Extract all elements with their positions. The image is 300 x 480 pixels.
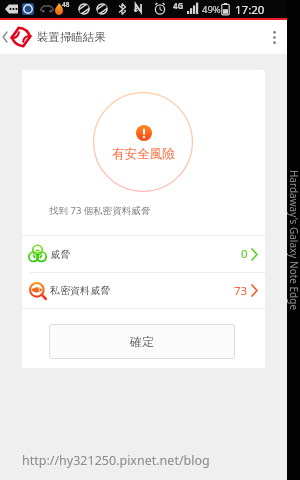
- button[interactable]: More options: [262, 25, 286, 49]
- button[interactable]: 威脅: [22, 236, 265, 272]
- staticText: 73: [234, 283, 248, 299]
- staticText: 威脅: [50, 248, 70, 261]
- staticText: 裝置掃瞄結果: [37, 30, 106, 44]
- staticText: 49%: [202, 3, 221, 16]
- staticText: Hardaway's Galaxy Note Edge: [287, 125, 300, 355]
- staticText: 找到 73 個私密資料威脅: [49, 204, 151, 217]
- staticText: 確定: [130, 334, 154, 349]
- button[interactable]: 私密資料威脅: [22, 273, 265, 308]
- staticText: 0: [241, 246, 248, 262]
- staticText: 48: [62, 0, 70, 9]
- staticText: 4G: [173, 0, 184, 11]
- staticText: 17:20: [235, 2, 265, 18]
- button[interactable]: Back: [0, 20, 10, 54]
- staticText: 有安全風險: [112, 146, 175, 162]
- staticText: 私密資料威脅: [50, 284, 110, 297]
- button[interactable]: 確定: [49, 324, 235, 359]
- staticText: http://hy321250.pixnet.net/blog: [22, 452, 210, 469]
